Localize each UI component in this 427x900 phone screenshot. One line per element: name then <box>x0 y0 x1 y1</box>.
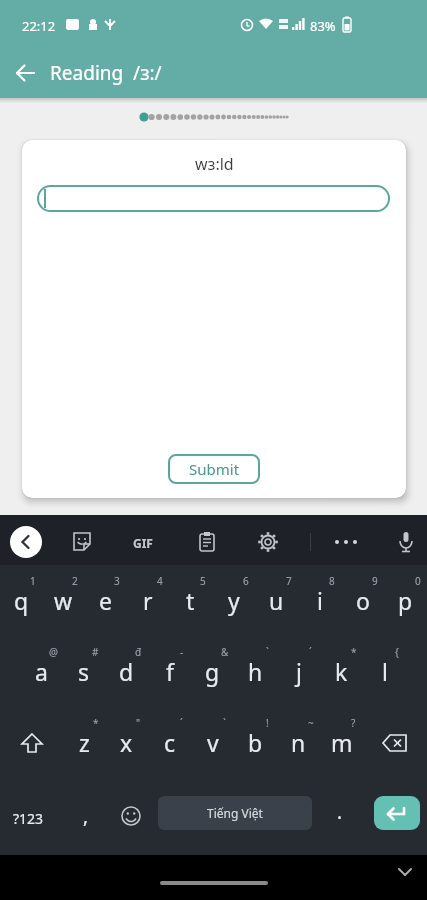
button[interactable]: n <box>277 707 320 778</box>
button[interactable]: y <box>212 565 255 636</box>
button[interactable] <box>68 528 96 556</box>
button[interactable]: x <box>105 707 148 778</box>
staticText: # <box>92 645 99 659</box>
staticText: Tiếng Việt <box>207 805 263 821</box>
staticText: f <box>166 656 174 687</box>
button[interactable]: i <box>298 565 341 636</box>
staticText: ! <box>266 716 269 730</box>
button[interactable]: u <box>255 565 298 636</box>
staticText: m <box>331 727 353 758</box>
staticText: 5 <box>200 574 206 588</box>
button[interactable] <box>392 528 420 556</box>
staticText: 0 <box>415 574 421 588</box>
staticText: " <box>136 716 141 730</box>
staticText: - <box>180 645 184 659</box>
staticText: q <box>14 585 29 616</box>
button[interactable] <box>363 707 427 778</box>
staticText: { <box>395 645 399 659</box>
staticText: s <box>78 656 90 687</box>
staticText: @ <box>49 645 58 659</box>
staticText: Submit <box>189 459 240 479</box>
button[interactable]: l <box>363 636 406 707</box>
button[interactable]: m <box>320 707 363 778</box>
staticText: o <box>356 585 370 616</box>
staticText: 83% <box>310 17 336 35</box>
button[interactable] <box>10 526 42 558</box>
button[interactable] <box>0 707 63 778</box>
staticText: 8 <box>329 574 335 588</box>
staticText: r <box>143 585 153 616</box>
staticText: wɜ:ld <box>195 153 234 175</box>
button[interactable]: s <box>62 636 105 707</box>
button[interactable]: . <box>337 799 343 825</box>
staticText: ~ <box>308 716 314 730</box>
staticText: & <box>221 645 229 659</box>
button[interactable]: g <box>191 636 234 707</box>
staticText: 6 <box>243 574 249 588</box>
staticText: d <box>119 656 134 687</box>
staticText: h <box>248 656 263 687</box>
button[interactable] <box>254 528 282 556</box>
staticText: ´ <box>180 716 183 730</box>
staticText: u <box>269 585 284 616</box>
button[interactable]: v <box>191 707 234 778</box>
staticText: n <box>291 727 306 758</box>
button[interactable]: GIF <box>133 535 153 551</box>
button[interactable]: , <box>83 803 89 829</box>
staticText: 4 <box>157 574 163 588</box>
button[interactable] <box>193 528 221 556</box>
staticText: z <box>79 727 90 758</box>
staticText: j <box>296 656 302 687</box>
staticText: t <box>186 585 195 616</box>
button[interactable]: Submit <box>168 454 260 484</box>
staticText: i <box>317 585 323 616</box>
button[interactable]: f <box>148 636 191 707</box>
button[interactable] <box>332 528 360 556</box>
button[interactable]: r <box>126 565 169 636</box>
button[interactable]: t <box>169 565 212 636</box>
button[interactable] <box>37 185 390 212</box>
staticText: * <box>351 645 357 659</box>
staticText: v <box>207 727 219 758</box>
button[interactable]: z <box>63 707 105 778</box>
staticText: 2 <box>72 574 78 588</box>
staticText: 3 <box>114 574 120 588</box>
button[interactable]: c <box>148 707 191 778</box>
staticText: p <box>398 585 413 616</box>
staticText: c <box>164 727 176 758</box>
staticText: 9 <box>372 574 378 588</box>
button[interactable]: w <box>42 565 84 636</box>
staticText: w <box>54 585 73 616</box>
staticText: g <box>205 656 220 687</box>
button[interactable]: ?123 <box>13 809 44 828</box>
button[interactable]: a <box>20 636 62 707</box>
staticText: 1 <box>30 574 36 588</box>
button[interactable]: b <box>234 707 277 778</box>
staticText: đ <box>135 645 142 659</box>
button[interactable]: o <box>341 565 384 636</box>
button[interactable]: p <box>384 565 427 636</box>
button[interactable] <box>374 796 420 830</box>
button[interactable]: h <box>234 636 277 707</box>
button[interactable] <box>8 56 42 90</box>
staticText: b <box>248 727 263 758</box>
staticText: Reading /ɜ:/ <box>50 60 162 86</box>
staticText: ? <box>351 716 356 730</box>
button[interactable]: d <box>105 636 148 707</box>
button[interactable]: Tiếng Việt <box>158 796 312 830</box>
staticText: a <box>35 656 48 687</box>
button[interactable] <box>392 859 418 885</box>
button[interactable]: e <box>84 565 126 636</box>
staticText: ´ <box>309 645 312 659</box>
staticText: k <box>335 656 348 687</box>
staticText: l <box>382 656 388 687</box>
button[interactable]: k <box>320 636 363 707</box>
button[interactable] <box>118 803 144 829</box>
staticText: ` <box>223 716 226 730</box>
staticText: 22:12 <box>22 17 56 35</box>
button[interactable]: q <box>0 565 42 636</box>
button[interactable]: j <box>277 636 320 707</box>
staticText: y <box>228 585 240 616</box>
staticText: 7 <box>286 574 292 588</box>
staticText: ` <box>266 645 269 659</box>
